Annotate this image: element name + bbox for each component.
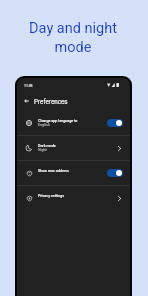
- staticText: Change app language to: [38, 119, 78, 123]
- button[interactable]: Open: [115, 194, 123, 202]
- staticText: 11:35: [24, 84, 33, 88]
- staticText: Privacy settings: [38, 194, 65, 198]
- button[interactable]: Toggle on: [107, 169, 123, 177]
- staticText: Dark mode: [38, 144, 56, 148]
- staticText: Day and night mode: [0, 20, 147, 56]
- button[interactable]: Toggle on: [107, 119, 123, 127]
- staticText: Night: [38, 148, 47, 152]
- button[interactable]: Show mac address: [17, 161, 130, 185]
- button[interactable]: Change app language to: [17, 111, 130, 135]
- staticText: Show mac address: [38, 169, 69, 173]
- staticText: English: [38, 123, 50, 127]
- button[interactable]: Privacy settings: [17, 186, 130, 210]
- button[interactable]: Back: [20, 95, 32, 107]
- staticText: Preferences: [34, 98, 68, 105]
- button[interactable]: Open: [115, 144, 123, 152]
- button[interactable]: Dark mode: [17, 136, 130, 160]
